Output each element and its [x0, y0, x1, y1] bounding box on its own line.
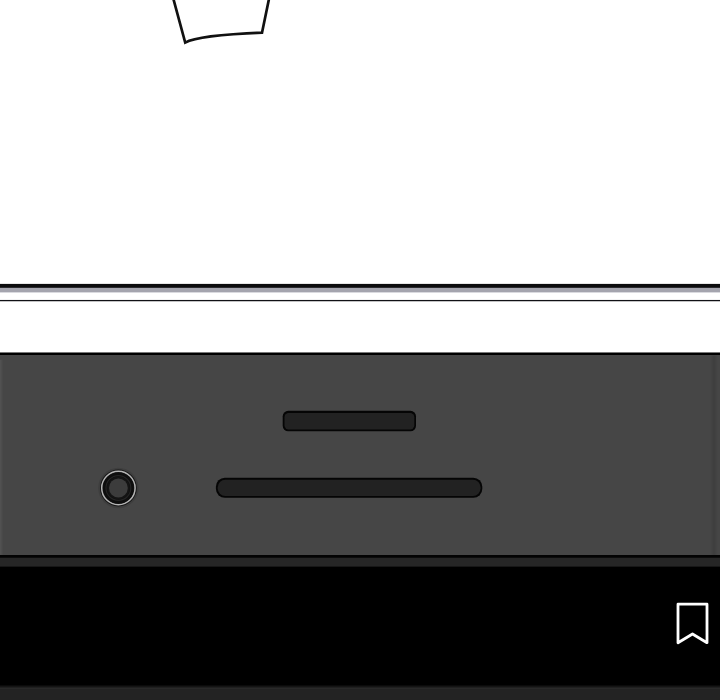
button[interactable]: Bookmark this episode: [663, 589, 720, 655]
button[interactable]: Episode artwork, tap to show controls: [0, 0, 720, 700]
